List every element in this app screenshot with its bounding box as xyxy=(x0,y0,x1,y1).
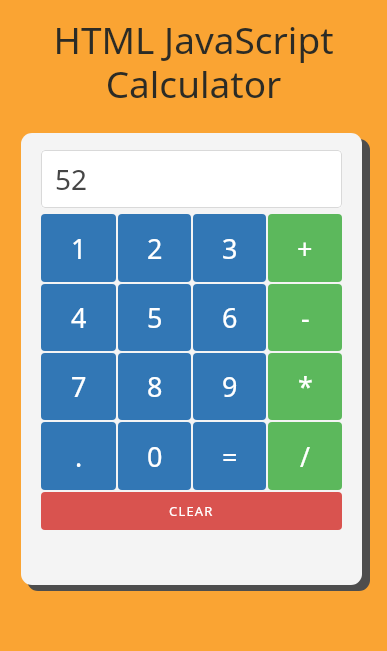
staticText: / xyxy=(300,438,311,475)
staticText: 6 xyxy=(222,299,238,336)
staticText: 0 xyxy=(147,438,163,475)
staticText: HTML JavaScript Calculator xyxy=(10,14,377,108)
staticText: 7 xyxy=(71,368,87,405)
staticText: = xyxy=(222,438,238,475)
button[interactable]: * xyxy=(268,353,342,420)
staticText: + xyxy=(297,230,313,267)
button[interactable]: 6 xyxy=(193,284,266,351)
staticText: 8 xyxy=(147,368,163,405)
button[interactable]: - xyxy=(268,284,342,351)
button[interactable]: 9 xyxy=(193,353,266,420)
button[interactable]: . xyxy=(41,422,116,490)
button[interactable]: 3 xyxy=(193,214,266,282)
button[interactable]: 4 xyxy=(41,284,116,351)
staticText: CLEAR xyxy=(169,502,214,520)
button[interactable]: 7 xyxy=(41,353,116,420)
staticText: . xyxy=(75,438,83,475)
button[interactable]: 5 xyxy=(118,284,191,351)
button[interactable]: + xyxy=(268,214,342,282)
staticText: 1 xyxy=(71,230,87,267)
button[interactable]: / xyxy=(268,422,342,490)
staticText: - xyxy=(301,299,310,336)
button[interactable]: 8 xyxy=(118,353,191,420)
button[interactable]: 0 xyxy=(118,422,191,490)
button[interactable]: CLEAR xyxy=(41,492,342,530)
staticText: 52 xyxy=(55,160,88,198)
button[interactable]: 2 xyxy=(118,214,191,282)
button[interactable]: 52 xyxy=(41,150,342,208)
staticText: * xyxy=(298,368,313,405)
staticText: 2 xyxy=(147,230,163,267)
staticText: 3 xyxy=(222,230,238,267)
staticText: 5 xyxy=(147,299,163,336)
staticText: 9 xyxy=(222,368,238,405)
button[interactable]: 1 xyxy=(41,214,116,282)
staticText: 4 xyxy=(71,299,87,336)
button[interactable]: = xyxy=(193,422,266,490)
